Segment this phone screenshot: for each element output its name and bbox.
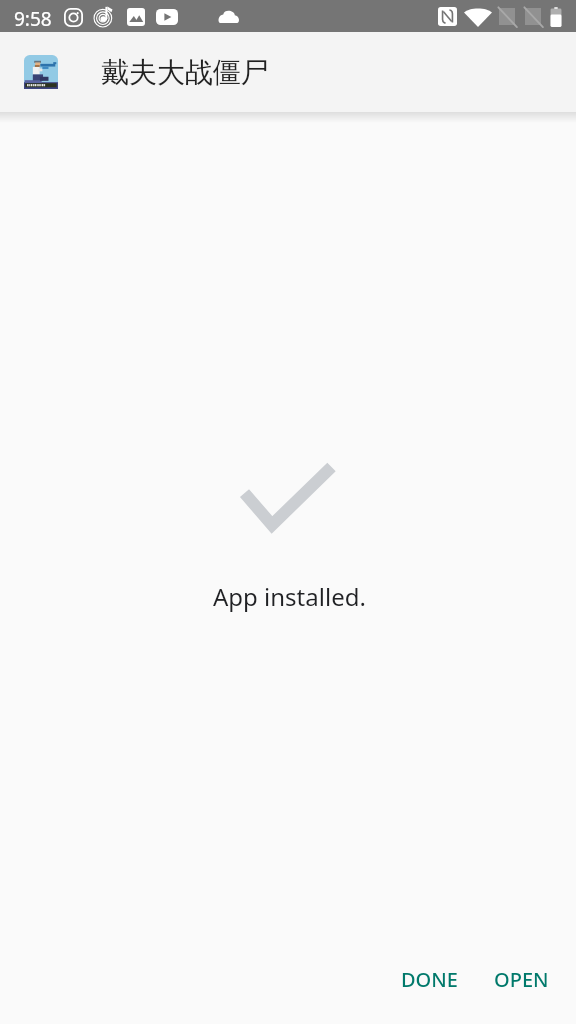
other: Cloud sync <box>218 10 239 23</box>
other: Wi-Fi signal full <box>464 7 492 27</box>
button[interactable]: DONE <box>385 952 474 1007</box>
other: No SIM 2 signal <box>525 8 541 25</box>
staticText: App installed. <box>213 580 366 613</box>
other: No SIM 1 signal <box>499 8 515 25</box>
staticText: 9:58 <box>14 6 52 32</box>
other: App icon <box>24 55 58 89</box>
staticText: DONE <box>401 966 458 993</box>
staticText: 戴夫大战僵尸 <box>101 55 269 90</box>
staticText: OPEN <box>494 966 549 993</box>
button[interactable]: OPEN <box>478 952 565 1007</box>
other: Photos notification <box>127 8 145 26</box>
other: YouTube notification <box>156 9 178 25</box>
other: Instagram notification <box>64 8 83 27</box>
other: Battery <box>549 7 563 27</box>
other: NFC enabled <box>438 7 457 26</box>
other: Music notification <box>93 6 114 27</box>
